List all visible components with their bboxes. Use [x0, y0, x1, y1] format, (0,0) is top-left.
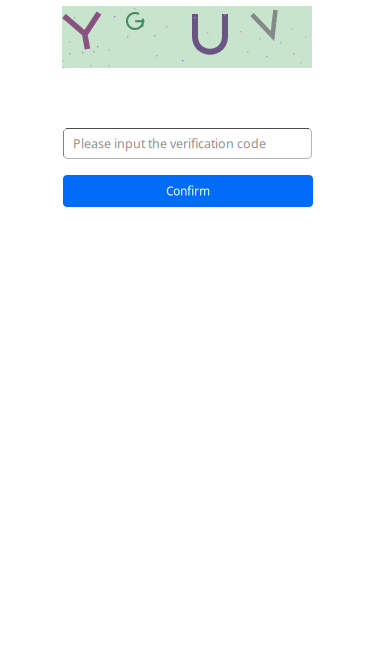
staticText: Please input the verification code — [73, 135, 266, 152]
button[interactable]: Refresh verification code image — [62, 6, 312, 68]
staticText: Confirm — [166, 183, 210, 199]
button[interactable]: Please input the verification code — [63, 128, 312, 159]
button[interactable]: Confirm — [63, 175, 313, 207]
